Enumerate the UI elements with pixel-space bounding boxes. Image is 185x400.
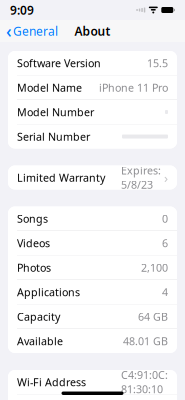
- staticText: 0: [162, 211, 168, 226]
- staticText: Limited Warranty: [17, 170, 105, 185]
- button[interactable]: Photos: [8, 255, 177, 279]
- staticText: ›: [164, 169, 168, 186]
- staticText: 64 GB: [138, 309, 168, 324]
- button[interactable]: Videos: [8, 231, 177, 255]
- staticText: General: [13, 23, 58, 39]
- staticText: Songs: [17, 211, 48, 226]
- button[interactable]: Bluetooth: [8, 394, 177, 400]
- staticText: Videos: [17, 236, 50, 250]
- button[interactable]: Software Version: [8, 51, 177, 75]
- button[interactable]: Model Name: [8, 75, 177, 99]
- button[interactable]: ‹: [0, 20, 64, 42]
- staticText: Software Version: [17, 56, 101, 70]
- staticText: iPhone 11 Pro: [99, 80, 168, 95]
- staticText: Applications: [17, 285, 80, 299]
- button[interactable]: Applications: [8, 280, 177, 304]
- staticText: Capacity: [17, 309, 60, 324]
- staticText: Wi-Fi Address: [17, 375, 86, 389]
- button[interactable]: Limited Warranty: [8, 165, 177, 189]
- button[interactable]: Wi-Fi Address: [8, 370, 177, 394]
- button[interactable]: Model Number: [8, 100, 177, 124]
- staticText: ‹: [6, 19, 12, 42]
- staticText: Expires: 5/8/23: [121, 163, 161, 192]
- button[interactable]: Available: [8, 329, 177, 353]
- button[interactable]: Capacity: [8, 304, 177, 328]
- staticText: Model Number: [17, 105, 94, 119]
- button[interactable]: Songs: [8, 206, 177, 230]
- staticText: Model Name: [17, 80, 82, 95]
- staticText: 6: [162, 236, 168, 250]
- staticText: 4: [162, 285, 168, 299]
- staticText: 48.01 GB: [123, 334, 168, 348]
- button[interactable]: Serial Number: [8, 124, 177, 148]
- staticText: Photos: [17, 260, 51, 275]
- staticText: C4:91:0C:81:30:10: [121, 368, 168, 396]
- staticText: Available: [17, 334, 63, 348]
- staticText: 2,100: [141, 260, 168, 275]
- staticText: About: [74, 23, 110, 39]
- staticText: Serial Number: [17, 129, 90, 144]
- staticText: 9:09: [10, 2, 34, 18]
- staticText: 15.5: [147, 56, 168, 70]
